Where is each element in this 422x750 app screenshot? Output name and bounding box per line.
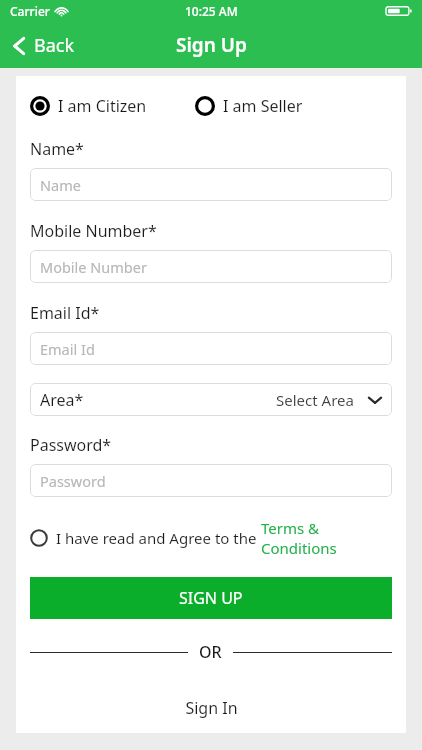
button[interactable]: I have read and Agree to the <box>30 516 392 560</box>
staticText: I am Citizen <box>58 95 147 117</box>
staticText: Area* <box>40 389 84 411</box>
staticText: Terms & Conditions <box>261 518 392 558</box>
staticText: Password* <box>30 434 112 456</box>
button[interactable]: Mobile Number <box>30 250 392 283</box>
staticText: 10:25 AM <box>185 3 238 19</box>
staticText: Email Id* <box>30 302 100 324</box>
staticText: Mobile Number* <box>30 220 157 242</box>
staticText: I am Seller <box>223 95 303 117</box>
button[interactable]: Email Id <box>30 332 392 365</box>
button[interactable]: Area* <box>30 383 392 416</box>
staticText: OR <box>199 641 222 663</box>
staticText: SIGN UP <box>179 587 243 609</box>
button[interactable]: Password <box>30 464 392 497</box>
button[interactable]: Name <box>30 168 392 201</box>
button[interactable]: SIGN UP <box>30 577 392 619</box>
staticText: Back <box>34 33 75 58</box>
button[interactable]: Sign In <box>30 697 392 719</box>
staticText: Mobile Number <box>40 257 147 277</box>
staticText: Carrier <box>10 3 50 19</box>
button[interactable]: I am Seller <box>195 92 303 120</box>
staticText: Name <box>40 175 81 195</box>
staticText: Select Area <box>276 390 354 410</box>
staticText: Password <box>40 471 106 491</box>
button[interactable]: Back <box>0 27 89 64</box>
staticText: I have read and Agree to the <box>56 528 261 548</box>
staticText: Sign In <box>185 697 238 719</box>
staticText: Name* <box>30 138 84 160</box>
button[interactable]: I am Citizen <box>30 92 147 120</box>
staticText: Sign Up <box>176 32 247 58</box>
staticText: Email Id <box>40 339 95 359</box>
